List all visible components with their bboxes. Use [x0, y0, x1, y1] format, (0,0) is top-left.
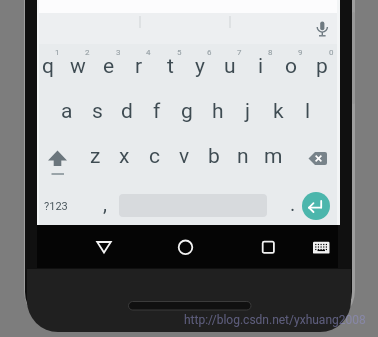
button[interactable] — [37, 13, 338, 44]
button[interactable]: , — [92, 183, 118, 223]
button[interactable] — [252, 230, 284, 264]
staticText: f — [153, 99, 161, 124]
staticText: , — [103, 192, 107, 215]
staticText: 2 — [85, 48, 90, 57]
button[interactable]: q — [33, 44, 63, 88]
button[interactable]: i — [246, 44, 276, 88]
button[interactable] — [308, 15, 336, 43]
staticText: y — [195, 54, 205, 79]
button[interactable]: o — [276, 44, 306, 88]
button[interactable] — [42, 136, 76, 178]
staticText: g — [181, 99, 193, 124]
button[interactable]: m — [258, 134, 288, 178]
staticText: 9 — [298, 48, 303, 57]
staticText: s — [92, 99, 103, 124]
button[interactable]: b — [199, 134, 229, 178]
button[interactable]: g — [172, 89, 202, 133]
button[interactable]: x — [109, 134, 139, 178]
staticText: z — [90, 144, 101, 169]
button[interactable]: p — [307, 44, 337, 88]
staticText: w — [70, 54, 86, 79]
staticText: t — [167, 54, 174, 79]
staticText: r — [135, 54, 143, 79]
staticText: p — [316, 54, 328, 79]
staticText: m — [264, 144, 283, 169]
staticText: a — [61, 99, 73, 124]
staticText: 6 — [207, 48, 212, 57]
button[interactable] — [305, 230, 337, 264]
staticText: l — [305, 99, 311, 124]
button[interactable]: k — [263, 89, 293, 133]
button[interactable]: f — [142, 89, 172, 133]
button[interactable]: l — [293, 89, 323, 133]
button[interactable]: v — [169, 134, 199, 178]
button[interactable]: a — [52, 89, 82, 133]
staticText: n — [237, 144, 249, 169]
staticText: 8 — [268, 48, 273, 57]
staticText: 4 — [146, 48, 151, 57]
staticText: x — [119, 144, 130, 169]
button[interactable]: u — [215, 44, 245, 88]
button[interactable]: e — [94, 44, 124, 88]
staticText: e — [103, 54, 115, 79]
staticText: h — [212, 99, 224, 124]
staticText: 0 — [329, 48, 334, 57]
staticText: d — [121, 99, 133, 124]
button[interactable]: c — [139, 134, 169, 178]
staticText: 3 — [116, 48, 121, 57]
staticText: b — [208, 144, 220, 169]
button[interactable]: y — [185, 44, 215, 88]
button[interactable]: w — [63, 44, 93, 88]
staticText: ?123 — [44, 200, 68, 213]
button[interactable] — [302, 136, 336, 178]
staticText: j — [245, 99, 251, 124]
staticText: 1 — [55, 48, 60, 57]
button[interactable] — [302, 192, 330, 220]
button[interactable]: s — [82, 89, 112, 133]
staticText: http://blog.csdn.net/yxhuang2008 — [184, 313, 366, 327]
button[interactable]: z — [80, 134, 110, 178]
staticText: i — [258, 54, 264, 79]
staticText: 7 — [237, 48, 242, 57]
staticText: o — [285, 54, 297, 79]
staticText: c — [149, 144, 160, 169]
staticText: 5 — [177, 48, 182, 57]
staticText: v — [179, 144, 190, 169]
button[interactable] — [88, 230, 120, 264]
staticText: u — [224, 54, 236, 79]
button[interactable]: ?123 — [38, 188, 74, 224]
button[interactable]: h — [203, 89, 233, 133]
button[interactable]: d — [112, 89, 142, 133]
button[interactable] — [169, 230, 201, 264]
button[interactable]: r — [124, 44, 154, 88]
staticText: q — [42, 54, 54, 79]
button[interactable]: t — [155, 44, 185, 88]
button[interactable]: n — [228, 134, 258, 178]
button[interactable]: j — [233, 89, 263, 133]
staticText: . — [290, 192, 296, 215]
staticText: k — [273, 99, 284, 124]
button[interactable]: . — [280, 183, 306, 223]
